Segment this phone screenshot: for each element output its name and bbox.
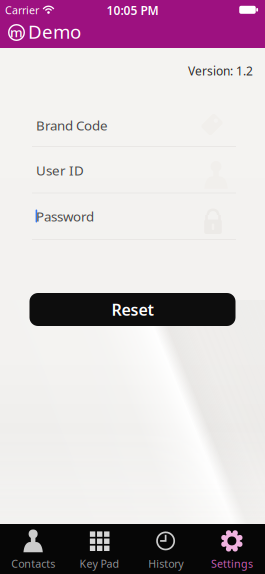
staticText: 10:05 PM — [106, 2, 158, 18]
staticText: User ID — [36, 161, 84, 179]
button[interactable]: Settings — [199, 524, 265, 574]
staticText: History — [148, 556, 183, 571]
staticText: Reset — [111, 299, 153, 320]
staticText: Version: 1.2 — [188, 63, 253, 79]
staticText: Settings — [211, 556, 253, 571]
button[interactable]: History — [132, 524, 199, 574]
staticText: Contacts — [11, 556, 55, 571]
button[interactable]: Contacts — [0, 524, 66, 574]
staticText: Carrier — [5, 3, 39, 17]
staticText: Demo — [28, 19, 81, 44]
button[interactable]: Reset — [29, 293, 235, 326]
staticText: m — [10, 23, 23, 41]
button[interactable]: Password — [32, 193, 236, 240]
staticText: Key Pad — [79, 556, 119, 571]
button[interactable]: Key Pad — [66, 524, 132, 574]
staticText: Password — [36, 207, 94, 225]
button[interactable]: User ID — [32, 147, 236, 193]
staticText: Brand Code — [36, 116, 108, 134]
button[interactable]: Brand Code — [32, 100, 236, 147]
